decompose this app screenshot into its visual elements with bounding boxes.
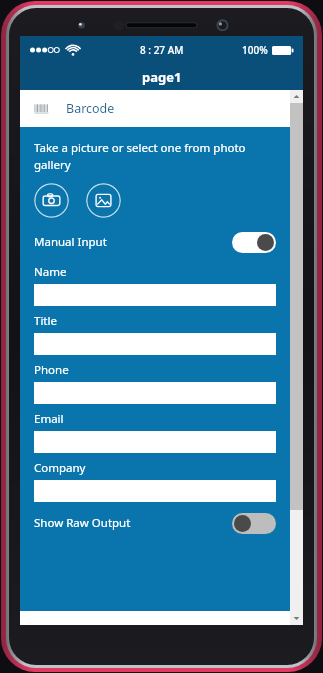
staticText: Phone [34,362,69,378]
button[interactable]: Off [232,513,276,534]
staticText: Name [34,264,67,280]
button[interactable]: On [232,232,276,253]
staticText: Email [34,411,64,427]
staticText: Take a picture or select one from photo … [34,140,276,172]
staticText: Show Raw Output [34,515,131,531]
staticText: page1 [142,68,182,86]
button[interactable]: Barcode [20,90,290,127]
staticText: Company [34,460,86,476]
staticText: Barcode [66,100,115,117]
staticText: Title [34,313,57,329]
staticText: 100% [242,43,268,57]
button[interactable]: Scroll up [290,90,303,103]
button[interactable]: Select from photo gallery [86,183,121,218]
staticText: Manual Input [34,234,107,250]
button[interactable]: Take a picture [34,183,69,218]
button[interactable]: Show Raw Output [34,511,276,535]
staticText: 8 : 27 AM [140,43,184,57]
button[interactable]: Manual Input [34,230,276,254]
button[interactable]: Scroll down [290,612,303,625]
